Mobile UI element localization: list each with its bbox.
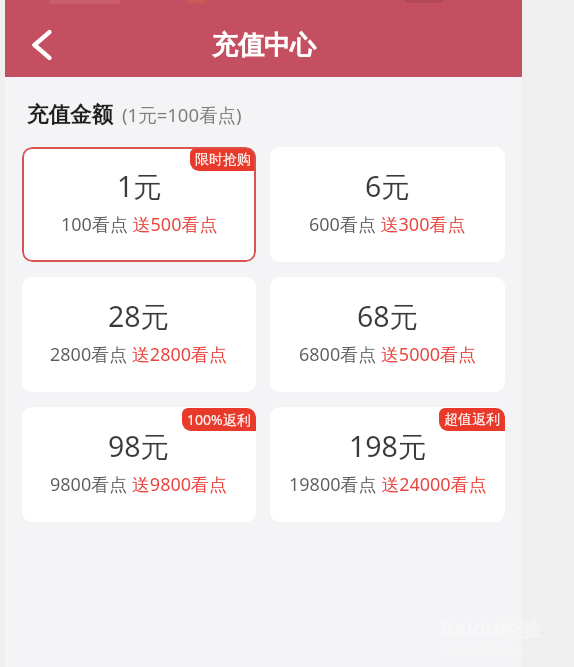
staticText: 100看点 送500看点 [61, 212, 218, 237]
staticText: 68元 [357, 297, 419, 336]
staticText: 600看点 送300看点 [309, 212, 466, 237]
staticText: 限时抢购 [195, 151, 251, 169]
button[interactable]: Back [17, 20, 67, 70]
button[interactable]: 198元 [270, 407, 505, 522]
button[interactable]: 1元 [22, 147, 256, 262]
staticText: 9800看点 送9800看点 [50, 472, 228, 497]
staticText: 198元 [349, 427, 427, 466]
button[interactable]: 68元 [270, 277, 505, 392]
staticText: 充值金额 [27, 101, 113, 128]
staticText: 2800看点 送2800看点 [50, 342, 228, 367]
staticText: 超值返利 [444, 411, 500, 429]
staticText: 充值中心 [212, 29, 316, 62]
staticText: 98元 [108, 427, 170, 466]
staticText: 6800看点 送5000看点 [299, 342, 477, 367]
button[interactable]: 28元 [22, 277, 256, 392]
staticText: (1元=100看点) [122, 102, 242, 127]
staticText: 28元 [108, 297, 170, 336]
staticText: 6元 [365, 167, 410, 206]
button[interactable]: 98元 [22, 407, 256, 522]
staticText: 19800看点 送24000看点 [289, 472, 487, 497]
staticText: 1元 [117, 167, 162, 206]
button[interactable]: 6元 [270, 147, 505, 262]
staticText: 100%返利 [187, 410, 251, 429]
